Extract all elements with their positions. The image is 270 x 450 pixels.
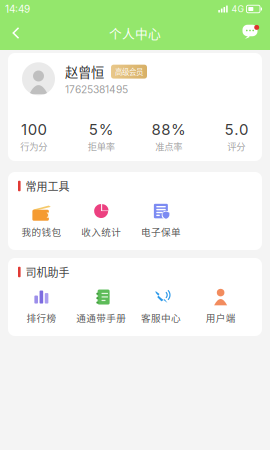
staticText: 通通带手册 — [76, 310, 126, 324]
staticText: 88% — [151, 120, 186, 138]
staticText: 赵曾恒 — [65, 62, 104, 81]
button[interactable]: 通通带手册 — [71, 290, 131, 324]
button[interactable]: Messages — [236, 19, 264, 47]
staticText: 我的钱包 — [21, 224, 61, 238]
button[interactable]: 客服中心 — [131, 290, 191, 324]
staticText: 常用工具 — [26, 178, 70, 194]
staticText: 评分 — [227, 139, 245, 153]
staticText: 14:49 — [5, 3, 30, 15]
staticText: 5.0 — [224, 120, 248, 138]
staticText: 电子保单 — [141, 224, 181, 238]
staticText: 排行榜 — [26, 310, 56, 324]
staticText: 拒单率 — [88, 139, 115, 153]
staticText: 高级会员 — [115, 66, 143, 77]
button[interactable]: 电子保单 — [131, 204, 191, 238]
staticText: 个人中心 — [109, 24, 161, 42]
button[interactable]: 收入统计 — [71, 204, 131, 238]
staticText: 收入统计 — [81, 224, 121, 238]
staticText: 5% — [89, 120, 114, 138]
button[interactable]: 用户端 — [191, 290, 251, 324]
staticText: 用户端 — [206, 310, 236, 324]
staticText: 客服中心 — [141, 310, 181, 324]
staticText: 17625381495 — [65, 83, 128, 96]
staticText: 4G — [231, 4, 243, 14]
staticText: 行为分 — [20, 139, 47, 153]
staticText: 100 — [21, 120, 47, 138]
staticText: 准点率 — [155, 139, 182, 153]
button[interactable]: 排行榜 — [11, 290, 71, 324]
staticText: 司机助手 — [26, 264, 70, 280]
button[interactable]: Back — [2, 19, 30, 47]
button[interactable]: 我的钱包 — [11, 204, 71, 238]
